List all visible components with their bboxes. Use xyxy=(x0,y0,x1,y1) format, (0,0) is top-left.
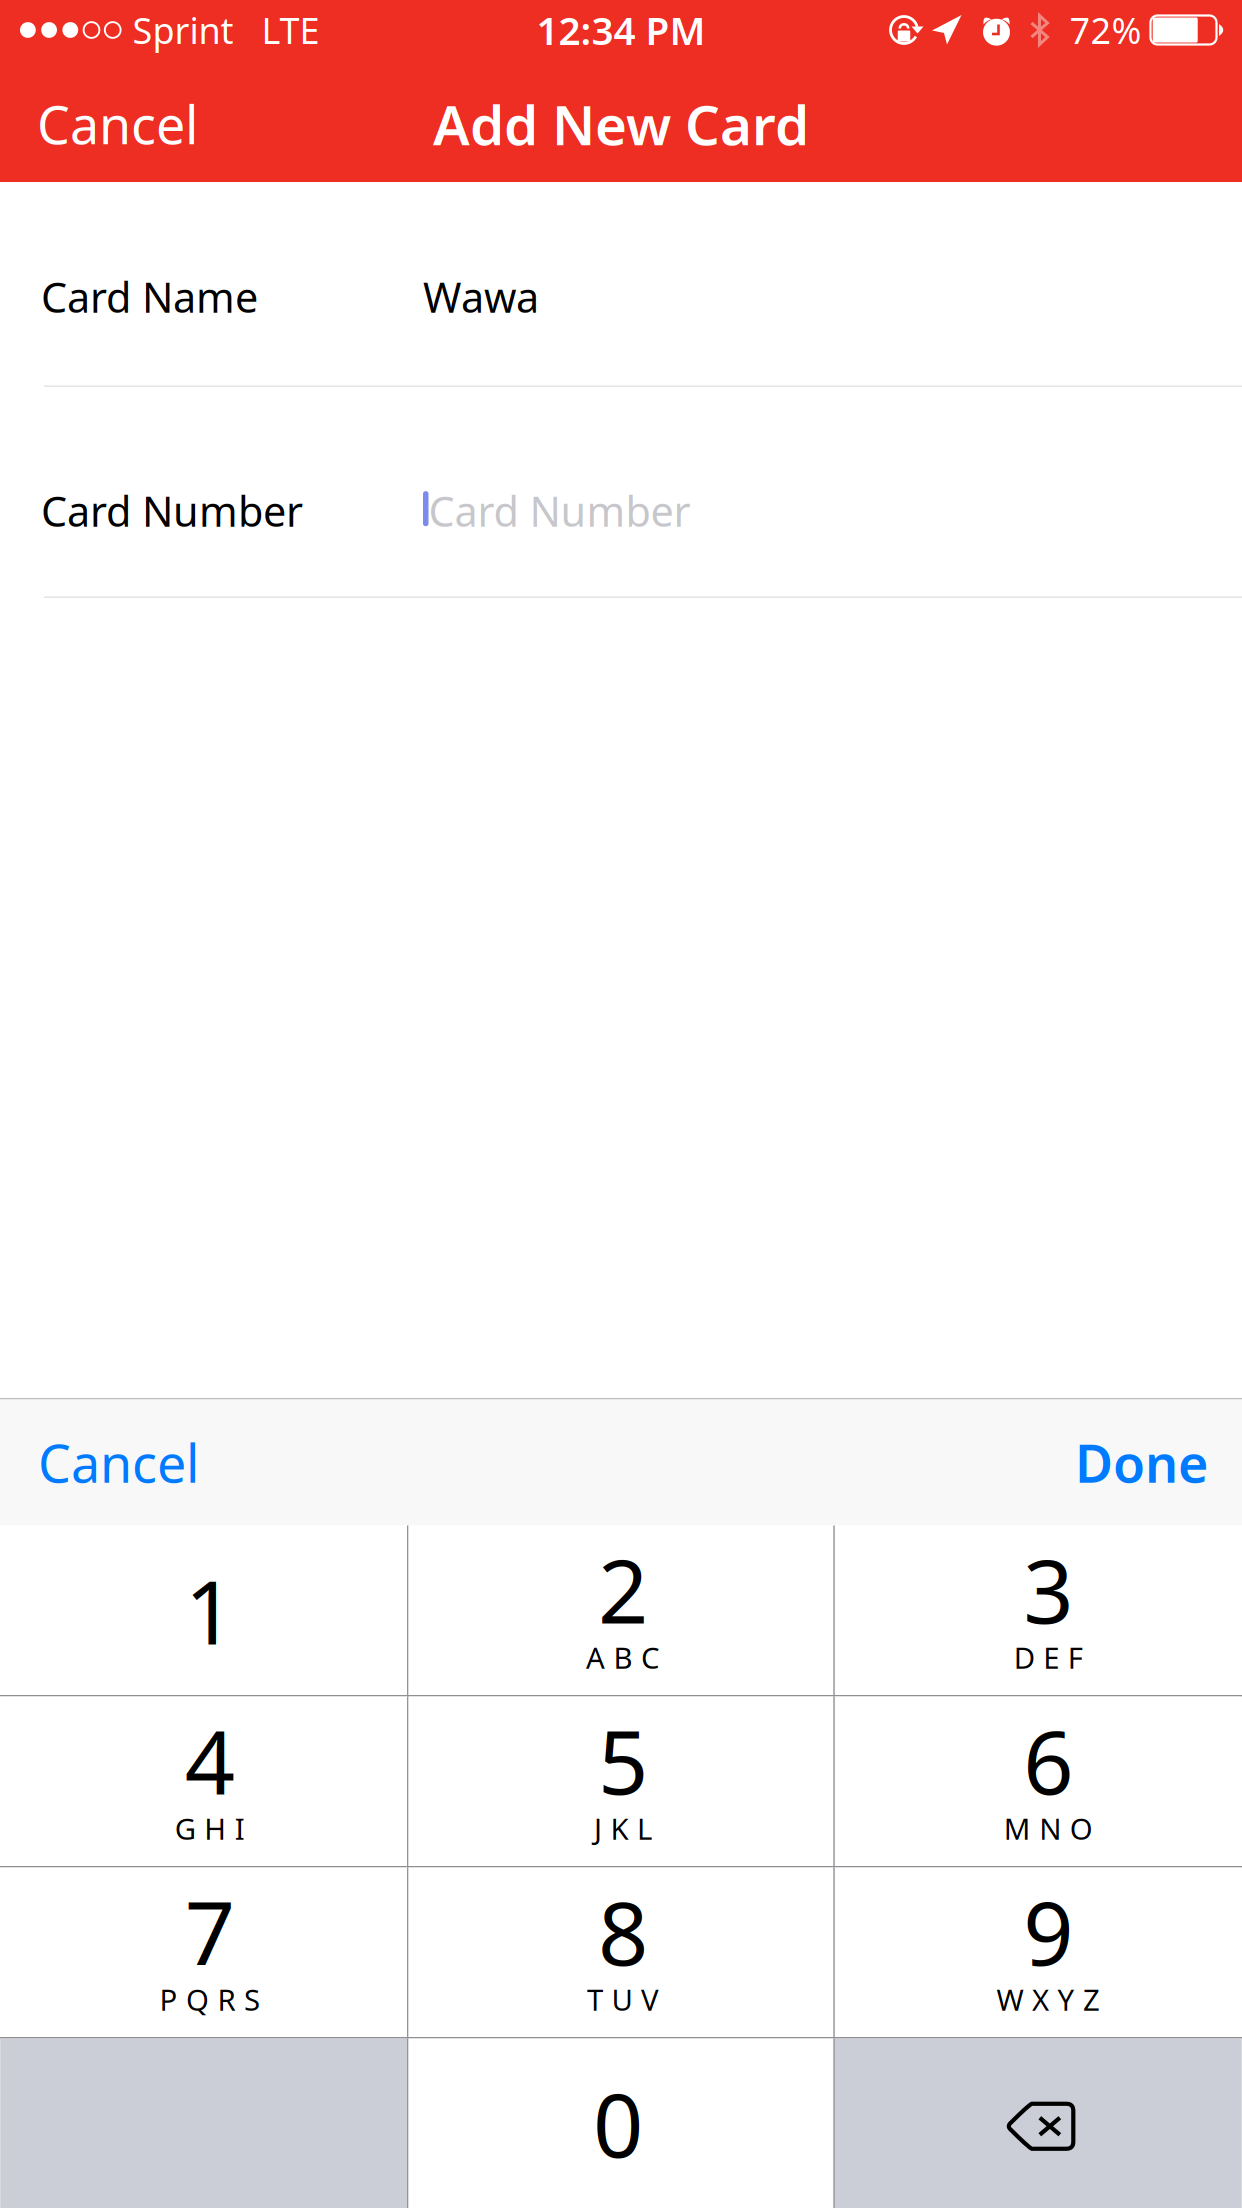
staticText: 1 xyxy=(185,1552,235,1669)
button[interactable]: 3 xyxy=(835,1525,1242,1695)
staticText: Add New Card xyxy=(433,88,809,160)
staticText: Card Number xyxy=(41,483,303,538)
staticText: Cancel xyxy=(38,1428,199,1497)
staticText: 6 xyxy=(1023,1702,1073,1819)
staticText: Cancel xyxy=(37,89,198,159)
staticText: LTE xyxy=(262,6,320,54)
staticText: 72% xyxy=(1069,6,1141,54)
button[interactable]: Card Name xyxy=(0,182,1242,385)
button[interactable]: Delete xyxy=(835,2038,1242,2208)
staticText: ABC xyxy=(586,1638,660,1677)
staticText: PQRS xyxy=(159,1980,260,2019)
staticText: Sprint xyxy=(133,6,234,54)
staticText: JKL xyxy=(594,1809,652,1848)
staticText: Card Number xyxy=(428,483,690,538)
button[interactable]: 4 xyxy=(0,1696,407,1866)
staticText: MNO xyxy=(1004,1809,1093,1848)
staticText: 4 xyxy=(185,1702,235,1819)
button[interactable]: 7 xyxy=(0,1867,407,2037)
staticText: 8 xyxy=(598,1873,648,1990)
button[interactable]: 5 xyxy=(409,1696,833,1866)
staticText: WXYZ xyxy=(996,1980,1100,2019)
staticText: Card Name xyxy=(41,269,258,324)
staticText: Done xyxy=(1075,1428,1208,1497)
staticText: 2 xyxy=(598,1531,648,1648)
button[interactable]: Cancel xyxy=(0,1399,229,1525)
staticText: DEF xyxy=(1014,1638,1083,1677)
staticText: Wawa xyxy=(423,269,539,324)
button[interactable]: Done xyxy=(1045,1399,1242,1525)
button[interactable]: 6 xyxy=(835,1696,1242,1866)
button[interactable]: Card Number xyxy=(0,387,1242,596)
button[interactable]: 2 xyxy=(409,1525,833,1695)
staticText: TUV xyxy=(587,1980,659,2019)
button[interactable]: 9 xyxy=(835,1867,1242,2037)
staticText: 12:34 PM xyxy=(536,4,705,56)
staticText: GHI xyxy=(175,1809,245,1848)
staticText: 3 xyxy=(1023,1531,1073,1648)
button[interactable]: 1 xyxy=(0,1525,407,1695)
button[interactable]: 0 xyxy=(409,2038,833,2208)
button[interactable]: Cancel xyxy=(0,60,228,182)
staticText: 7 xyxy=(185,1873,235,1990)
staticText: 5 xyxy=(598,1702,648,1819)
staticText: 9 xyxy=(1023,1873,1073,1990)
button[interactable]: 8 xyxy=(409,1867,833,2037)
staticText: 0 xyxy=(593,2065,643,2182)
